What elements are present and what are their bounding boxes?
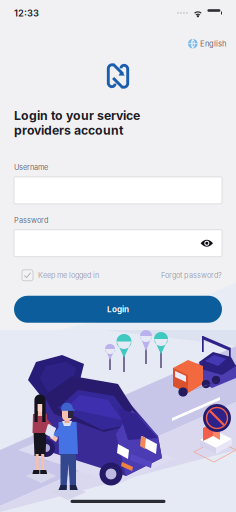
staticText: English xyxy=(200,39,226,48)
button[interactable]: English xyxy=(188,39,226,48)
staticText: Login xyxy=(107,304,129,314)
staticText: Password xyxy=(14,216,48,225)
button[interactable]: Keep me logged in xyxy=(22,270,99,281)
button[interactable]: Forgot password? xyxy=(161,271,222,280)
button[interactable]: Show password xyxy=(201,239,213,248)
staticText: Login to your service providers account xyxy=(14,108,140,138)
staticText: 12:33 xyxy=(14,7,39,19)
staticText: Forgot password? xyxy=(161,271,222,280)
button[interactable]: Login xyxy=(14,296,222,323)
staticText: Keep me logged in xyxy=(38,271,99,280)
staticText: Username xyxy=(14,163,48,172)
